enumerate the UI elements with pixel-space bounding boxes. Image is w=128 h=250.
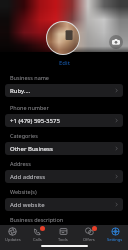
button[interactable]: +1 (479) 595-3575 [5,114,123,127]
staticText: Other Business [10,145,53,153]
staticText: Website(s) [10,188,37,195]
staticText: +1 (479) 595-3575 [10,117,60,125]
staticText: Settings [107,237,123,242]
button[interactable]: Edit [0,58,128,68]
staticText: Business name [10,74,49,81]
staticText: Edit [59,59,70,67]
staticText: Ruby.... [10,87,31,95]
staticText: Add website [10,201,45,209]
button[interactable]: Offers [76,225,102,242]
staticText: Phone number [10,104,49,111]
staticText: Calls [33,237,42,242]
button[interactable]: Settings [102,225,128,242]
staticText: Categories [10,132,38,139]
button[interactable]: Profile photo [47,22,79,54]
button[interactable]: Tools [50,225,76,242]
staticText: Offers [83,237,95,242]
staticText: Updates [5,237,21,242]
staticText: Business description [10,216,64,223]
button[interactable]: Change cover photo [109,35,123,49]
button[interactable]: Updates [0,225,25,242]
button[interactable]: Other Business [5,142,123,155]
button[interactable]: Calls [25,225,50,242]
staticText: Add address [10,173,46,181]
button[interactable]: Add address [5,170,123,183]
staticText: Address [10,160,31,167]
button[interactable]: Ruby.... [5,84,123,97]
button[interactable]: Add website [5,198,123,211]
staticText: Tools [58,237,68,242]
